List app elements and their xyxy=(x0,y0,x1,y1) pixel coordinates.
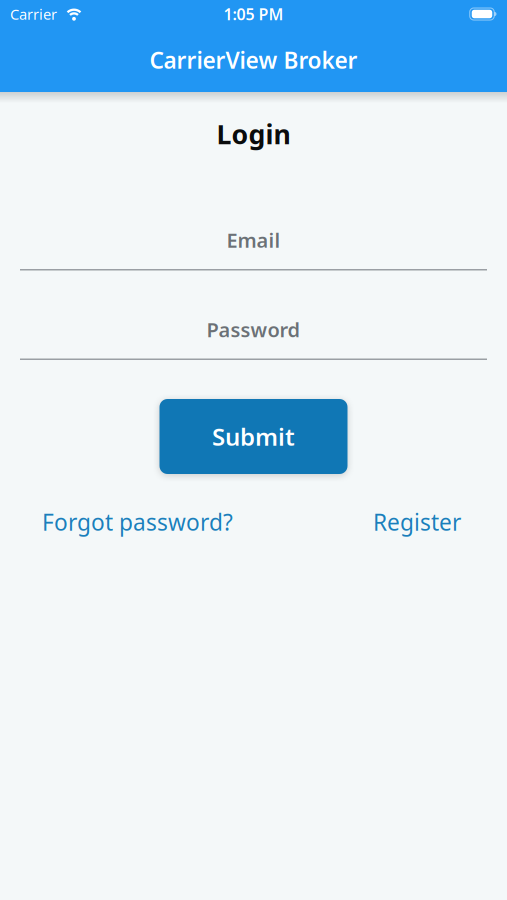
button[interactable]: CarrierView Broker xyxy=(149,45,357,75)
staticText: Password xyxy=(206,316,300,343)
button[interactable]: Submit xyxy=(159,399,347,474)
staticText: CarrierView Broker xyxy=(149,45,357,75)
staticText: Forgot password? xyxy=(42,507,233,537)
button[interactable]: Register xyxy=(373,507,461,537)
staticText: Email xyxy=(226,227,280,253)
staticText: Carrier xyxy=(10,4,57,24)
button[interactable]: Email xyxy=(20,215,487,270)
staticText: Login xyxy=(216,116,290,152)
staticText: Submit xyxy=(212,421,295,452)
button[interactable]: Password xyxy=(20,304,487,360)
staticText: 1:05 PM xyxy=(223,3,283,25)
button[interactable]: Forgot password? xyxy=(42,507,233,537)
staticText: Register xyxy=(373,507,461,537)
